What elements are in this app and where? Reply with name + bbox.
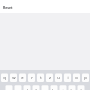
button[interactable]: w bbox=[9, 73, 18, 82]
staticText: q bbox=[3, 75, 6, 81]
button[interactable]: k bbox=[67, 86, 76, 90]
button[interactable]: t bbox=[36, 73, 45, 82]
button[interactable]: r bbox=[27, 73, 36, 82]
staticText: h bbox=[52, 88, 55, 90]
staticText: z bbox=[49, 75, 51, 81]
button[interactable]: i bbox=[63, 73, 72, 82]
staticText: e bbox=[21, 75, 24, 81]
button[interactable]: Reset bbox=[3, 5, 13, 10]
button[interactable]: q bbox=[0, 73, 9, 82]
button[interactable]: z bbox=[45, 73, 54, 82]
button[interactable]: j bbox=[58, 86, 67, 90]
staticText: j bbox=[62, 88, 64, 90]
staticText: l bbox=[80, 88, 82, 90]
button[interactable]: l bbox=[76, 86, 85, 90]
button[interactable]: u bbox=[54, 73, 63, 82]
button[interactable]: o bbox=[72, 73, 81, 82]
staticText: p bbox=[84, 75, 87, 81]
button[interactable]: e bbox=[18, 73, 27, 82]
staticText: k bbox=[70, 88, 73, 90]
button[interactable]: d bbox=[22, 86, 31, 90]
staticText: r bbox=[31, 75, 33, 81]
staticText: u bbox=[57, 75, 60, 81]
staticText: d bbox=[25, 88, 28, 90]
staticText: f bbox=[35, 88, 37, 90]
staticText: Reset bbox=[3, 5, 13, 10]
staticText: t bbox=[40, 75, 42, 81]
button[interactable]: s bbox=[13, 86, 22, 90]
staticText: w bbox=[12, 75, 16, 81]
staticText: i bbox=[67, 75, 69, 81]
button[interactable]: g bbox=[40, 86, 49, 90]
button[interactable]: f bbox=[31, 86, 40, 90]
button[interactable]: h bbox=[49, 86, 58, 90]
staticText: o bbox=[75, 75, 78, 81]
button[interactable]: a bbox=[4, 86, 13, 90]
button[interactable]: p bbox=[81, 73, 90, 82]
